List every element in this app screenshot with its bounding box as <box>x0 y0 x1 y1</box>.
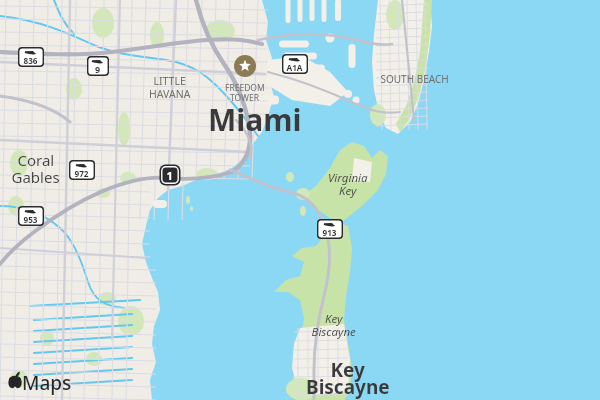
button[interactable]: Map of Miami <box>0 0 600 400</box>
